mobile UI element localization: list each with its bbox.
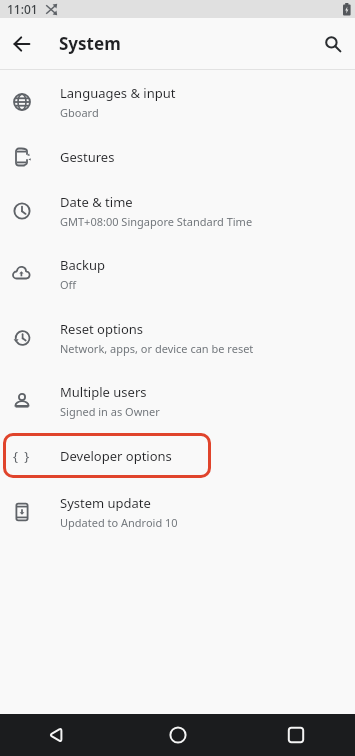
staticText: 11:01 bbox=[7, 1, 38, 17]
button[interactable]: Date & time bbox=[0, 180, 355, 242]
button[interactable] bbox=[311, 22, 355, 66]
button[interactable] bbox=[34, 714, 78, 756]
button[interactable]: Backup bbox=[0, 242, 355, 306]
staticText: Gboard bbox=[60, 105, 99, 120]
button[interactable]: Reset options bbox=[0, 306, 355, 369]
staticText: Reset options bbox=[60, 320, 144, 338]
staticText: Off bbox=[60, 277, 77, 292]
staticText: Date & time bbox=[60, 193, 133, 211]
button[interactable] bbox=[0, 22, 44, 66]
staticText: GMT+08:00 Singapore Standard Time bbox=[60, 214, 253, 229]
staticText: Developer options bbox=[60, 447, 172, 465]
staticText: Updated to Android 10 bbox=[60, 515, 178, 530]
button[interactable] bbox=[274, 714, 318, 756]
staticText: Signed in as Owner bbox=[60, 404, 160, 419]
button[interactable]: { } bbox=[0, 432, 355, 480]
button[interactable]: Multiple users bbox=[0, 369, 355, 432]
button[interactable] bbox=[156, 714, 200, 756]
staticText: System update bbox=[60, 494, 151, 512]
button[interactable]: Languages & input bbox=[0, 70, 355, 133]
staticText: Network, apps, or device can be reset bbox=[60, 341, 254, 356]
staticText: Languages & input bbox=[60, 84, 176, 102]
staticText: Gestures bbox=[60, 148, 115, 166]
staticText: System bbox=[59, 32, 121, 55]
button[interactable]: Gestures bbox=[0, 133, 355, 180]
staticText: Backup bbox=[60, 256, 105, 274]
staticText: { } bbox=[13, 447, 31, 465]
staticText: Multiple users bbox=[60, 383, 147, 401]
button[interactable]: System update bbox=[0, 480, 355, 543]
